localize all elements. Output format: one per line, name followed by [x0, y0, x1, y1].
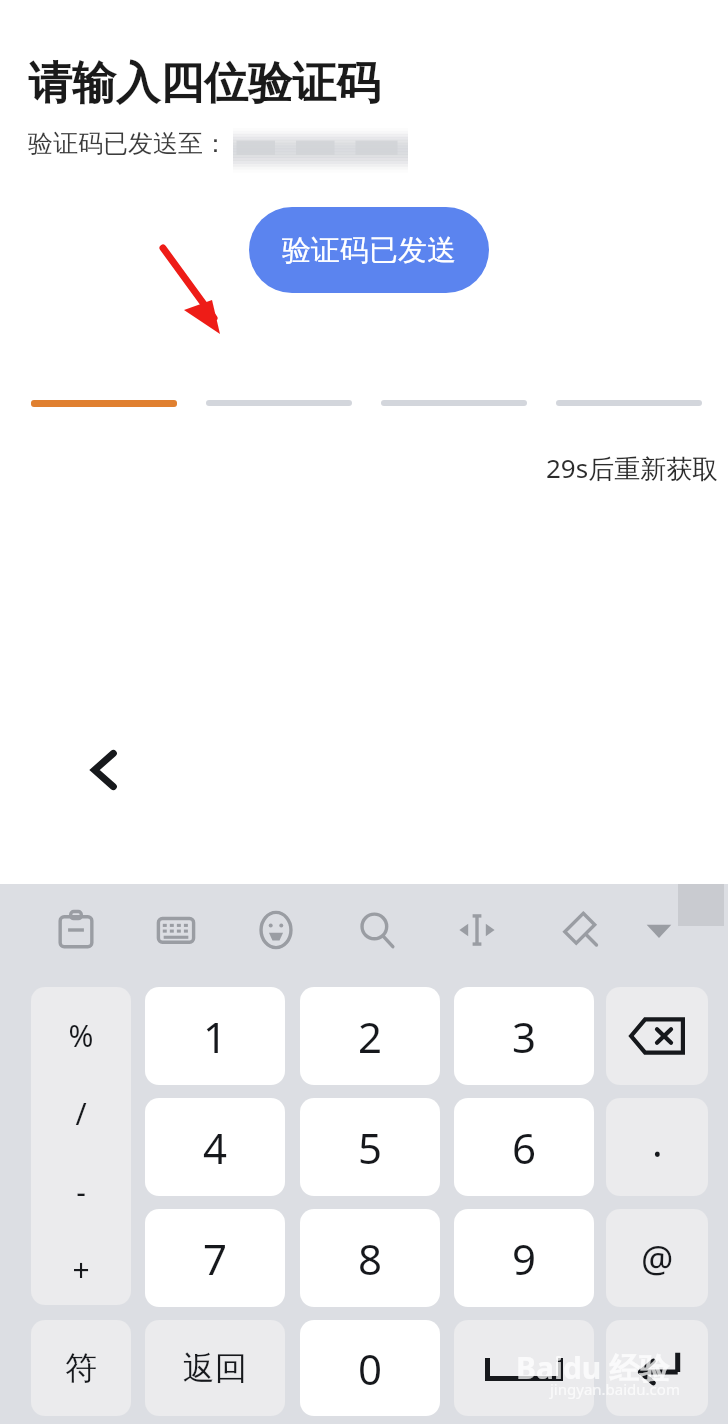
button[interactable]: 1 — [145, 987, 285, 1085]
button[interactable]: 返回 — [145, 1320, 285, 1416]
staticText: 符 — [65, 1348, 97, 1388]
button[interactable]: Keyboard tool 3 — [240, 894, 312, 966]
button[interactable] — [381, 400, 527, 406]
staticText: / — [31, 1093, 131, 1134]
button[interactable]: 2 — [300, 987, 440, 1085]
button[interactable]: . — [606, 1098, 708, 1196]
button[interactable]: Backspace — [606, 987, 708, 1085]
button[interactable]: @ — [606, 1209, 708, 1307]
button[interactable]: 8 — [300, 1209, 440, 1307]
button[interactable]: 6 — [454, 1098, 594, 1196]
button[interactable]: 验证码已发送 — [249, 207, 489, 293]
staticText: 3 — [512, 1008, 537, 1065]
button[interactable]: Enter — [606, 1320, 708, 1416]
staticText: 1 — [203, 1008, 228, 1065]
staticText: 验证码已发送 — [282, 232, 456, 269]
staticText: @ — [641, 1234, 674, 1283]
staticText: 返回 — [183, 1348, 247, 1388]
button[interactable]: 0 — [300, 1320, 440, 1416]
button[interactable]: 5 — [300, 1098, 440, 1196]
staticText: 验证码已发送至： — [28, 128, 228, 159]
staticText: . — [652, 1114, 663, 1168]
button[interactable] — [556, 400, 702, 406]
staticText: Baidu 经验 — [516, 1347, 670, 1388]
staticText: - — [31, 1171, 131, 1212]
staticText: % — [31, 1015, 131, 1056]
staticText: + — [31, 1249, 131, 1290]
staticText: 请输入四位验证码 — [28, 56, 380, 111]
button[interactable]: Back — [33, 698, 177, 842]
staticText: 5 — [358, 1119, 383, 1176]
button[interactable] — [31, 400, 177, 407]
button[interactable]: 符 — [31, 1320, 131, 1416]
button[interactable]: % — [31, 987, 131, 1305]
button[interactable]: Space — [454, 1320, 594, 1416]
button[interactable]: 3 — [454, 987, 594, 1085]
button[interactable]: 29s后重新获取 — [546, 450, 719, 486]
staticText: 9 — [512, 1230, 537, 1287]
staticText: 6 — [512, 1119, 537, 1176]
button[interactable]: Keyboard tool 5 — [441, 894, 513, 966]
staticText: 2 — [358, 1008, 383, 1065]
button[interactable]: Keyboard tool 7 — [623, 894, 695, 966]
staticText: 4 — [203, 1119, 228, 1176]
staticText: 8 — [358, 1230, 383, 1287]
button[interactable]: Keyboard tool 4 — [341, 894, 413, 966]
button[interactable]: 4 — [145, 1098, 285, 1196]
button[interactable]: Keyboard tool 1 — [40, 894, 112, 966]
staticText: 7 — [203, 1230, 228, 1287]
staticText: jingyan.baidu.com — [550, 1379, 680, 1399]
button[interactable]: Keyboard tool 6 — [542, 894, 614, 966]
button[interactable]: 7 — [145, 1209, 285, 1307]
button[interactable] — [206, 400, 352, 406]
button[interactable]: 9 — [454, 1209, 594, 1307]
button[interactable]: Keyboard tool 2 — [140, 894, 212, 966]
staticText: 0 — [358, 1340, 383, 1397]
